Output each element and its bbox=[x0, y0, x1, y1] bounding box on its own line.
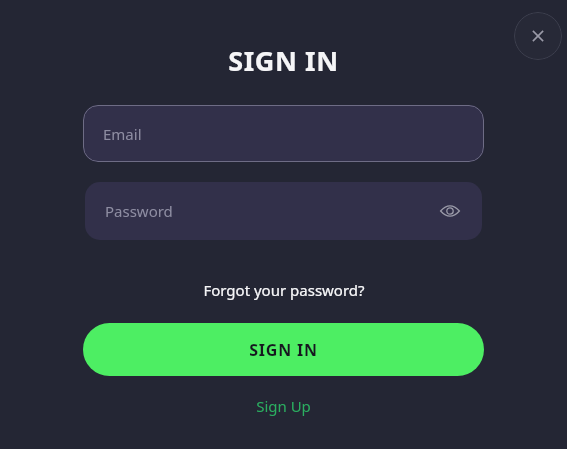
button[interactable]: Email bbox=[83, 105, 484, 162]
staticText: SIGN IN bbox=[228, 42, 339, 79]
button[interactable]: Forgot your password? bbox=[197, 277, 371, 303]
button[interactable]: Close bbox=[514, 12, 562, 60]
staticText: SIGN IN bbox=[249, 339, 318, 361]
button[interactable]: Sign Up bbox=[248, 393, 319, 419]
staticText: Sign Up bbox=[256, 396, 311, 416]
staticText: Forgot your password? bbox=[203, 280, 365, 300]
button[interactable]: SIGN IN bbox=[83, 323, 484, 376]
staticText: Password bbox=[105, 201, 173, 221]
button[interactable]: Password bbox=[85, 182, 482, 240]
staticText: Email bbox=[103, 124, 142, 144]
button[interactable]: Show password bbox=[434, 195, 466, 227]
